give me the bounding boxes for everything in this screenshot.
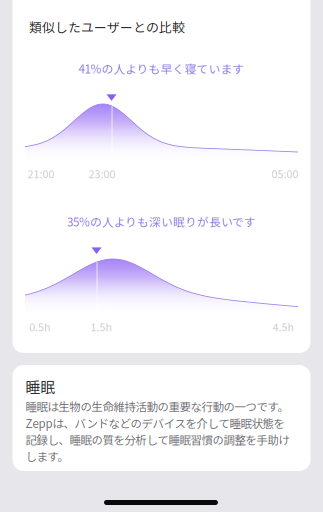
staticText: 1.5h — [90, 319, 111, 334]
staticText: 睡眠は生物の生命維持活動の重要な行動の一つです。Zeppは、バンドなどのデバイス… — [25, 398, 289, 464]
staticText: 05:00 — [271, 166, 298, 181]
staticText: 4.5h — [272, 319, 293, 334]
staticText: 21:00 — [27, 166, 54, 181]
staticText: 35%の人よりも深い眠りが長いです — [67, 213, 256, 230]
staticText: 0.5h — [29, 319, 50, 334]
staticText: 41%の人よりも早く寝ています — [78, 60, 244, 77]
staticText: 睡眠 — [25, 376, 55, 397]
staticText: 23:00 — [88, 166, 115, 181]
staticText: 類似したユーザーとの比較 — [29, 17, 185, 36]
